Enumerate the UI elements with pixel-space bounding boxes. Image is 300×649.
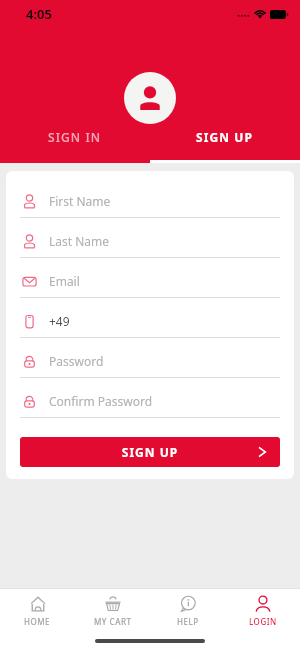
button[interactable]: Last Name	[14, 225, 286, 265]
button[interactable]: LOGIN	[225, 595, 300, 627]
button[interactable]: MY CART	[75, 595, 150, 627]
staticText: HOME	[24, 616, 51, 627]
button[interactable]: SIGN UP	[150, 129, 300, 153]
staticText: 4:05	[26, 5, 52, 23]
staticText: SIGN UP	[196, 129, 254, 145]
button[interactable]: HELP	[150, 595, 225, 627]
staticText: First Name	[49, 193, 111, 209]
staticText: SIGN IN	[48, 129, 102, 145]
staticText: +49	[49, 313, 70, 329]
staticText: MY CART	[94, 616, 132, 627]
staticText: Confirm Password	[49, 393, 153, 409]
button[interactable]: HOME	[0, 595, 75, 627]
button[interactable]: SIGN UP	[20, 437, 280, 467]
button[interactable]: Email	[14, 265, 286, 305]
staticText: Email	[49, 273, 80, 289]
staticText: HELP	[177, 616, 199, 627]
button[interactable]: First Name	[14, 185, 286, 225]
staticText: Last Name	[49, 233, 110, 249]
button[interactable]: SIGN IN	[0, 129, 150, 153]
button[interactable]: Password	[14, 345, 286, 385]
staticText: LOGIN	[249, 616, 277, 627]
button[interactable]: Confirm Password	[14, 385, 286, 425]
staticText: SIGN UP	[20, 444, 280, 460]
staticText: Password	[49, 353, 104, 369]
button[interactable]: +49	[14, 305, 286, 345]
